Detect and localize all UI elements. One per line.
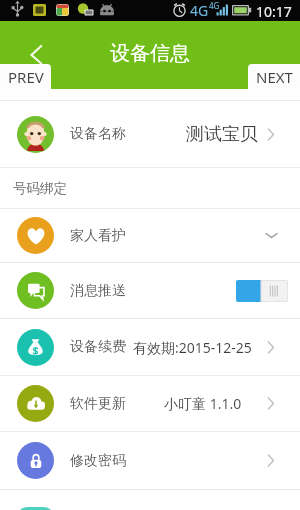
button[interactable]: 家人看护	[0, 209, 300, 262]
staticText: 消息推送	[70, 282, 126, 300]
staticText: 设备信息	[110, 41, 190, 66]
staticText: PREV	[8, 67, 44, 87]
staticText: NEXT	[256, 67, 293, 87]
button[interactable]: Message push toggle	[236, 280, 288, 302]
staticText: 家人看护	[70, 227, 126, 245]
button[interactable]: 软件更新	[0, 376, 300, 431]
staticText: 修改密码	[70, 452, 126, 470]
staticText: 号码绑定	[13, 180, 67, 197]
staticText: 软件更新	[70, 395, 126, 413]
button[interactable]: NEXT	[248, 64, 300, 89]
button[interactable]: 修改密码	[0, 432, 300, 489]
button[interactable]	[0, 490, 300, 510]
button[interactable]: PREV	[0, 64, 51, 89]
button[interactable]: 消息推送	[0, 263, 300, 318]
button[interactable]: 设备续费	[0, 319, 300, 375]
staticText: 小叮童 1.1.0	[164, 394, 242, 413]
staticText: 设备名称	[70, 125, 126, 143]
staticText: 设备续费	[70, 338, 126, 356]
staticText: 测试宝贝	[186, 123, 258, 146]
button[interactable]: 设备名称	[0, 101, 300, 167]
staticText: 有效期:2015-12-25	[133, 338, 252, 357]
button[interactable]: Back	[22, 41, 50, 69]
staticText: 4G	[190, 1, 209, 20]
staticText: 4G	[209, 0, 220, 11]
staticText: 10:17	[256, 2, 292, 21]
